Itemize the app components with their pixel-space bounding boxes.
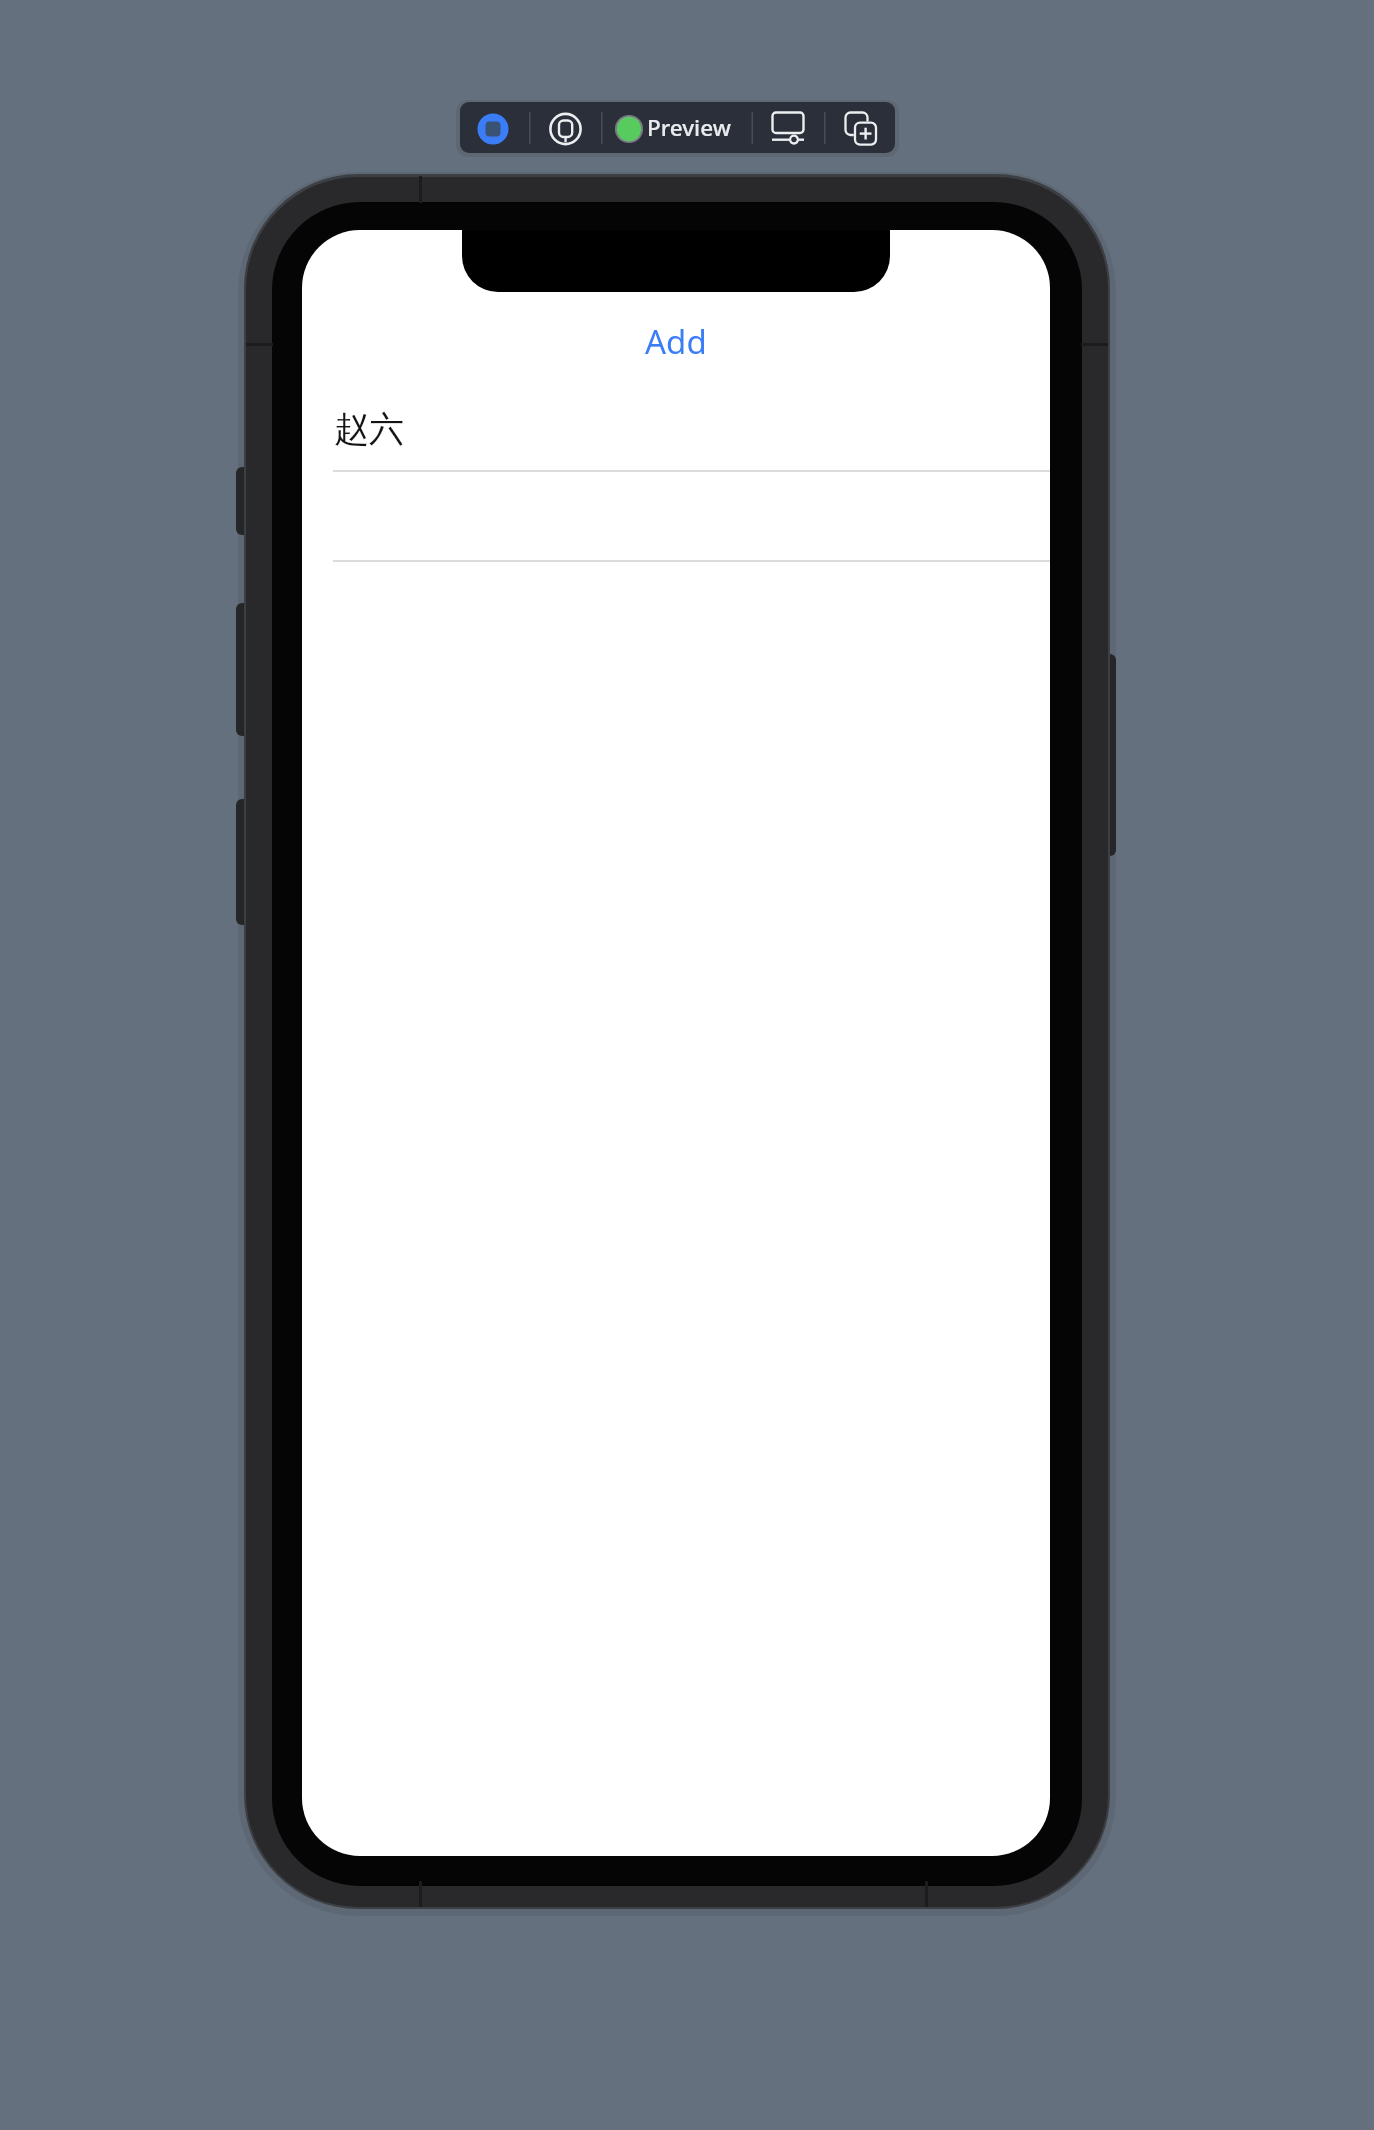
staticText: 赵六 <box>334 407 404 451</box>
button[interactable]: Add <box>635 319 717 364</box>
button[interactable] <box>832 106 888 149</box>
button[interactable] <box>470 106 518 149</box>
staticText: Add <box>645 319 707 364</box>
staticText: Preview <box>647 112 731 143</box>
button[interactable] <box>760 106 816 149</box>
button[interactable]: 赵六 <box>302 388 1050 470</box>
button[interactable] <box>542 106 590 149</box>
